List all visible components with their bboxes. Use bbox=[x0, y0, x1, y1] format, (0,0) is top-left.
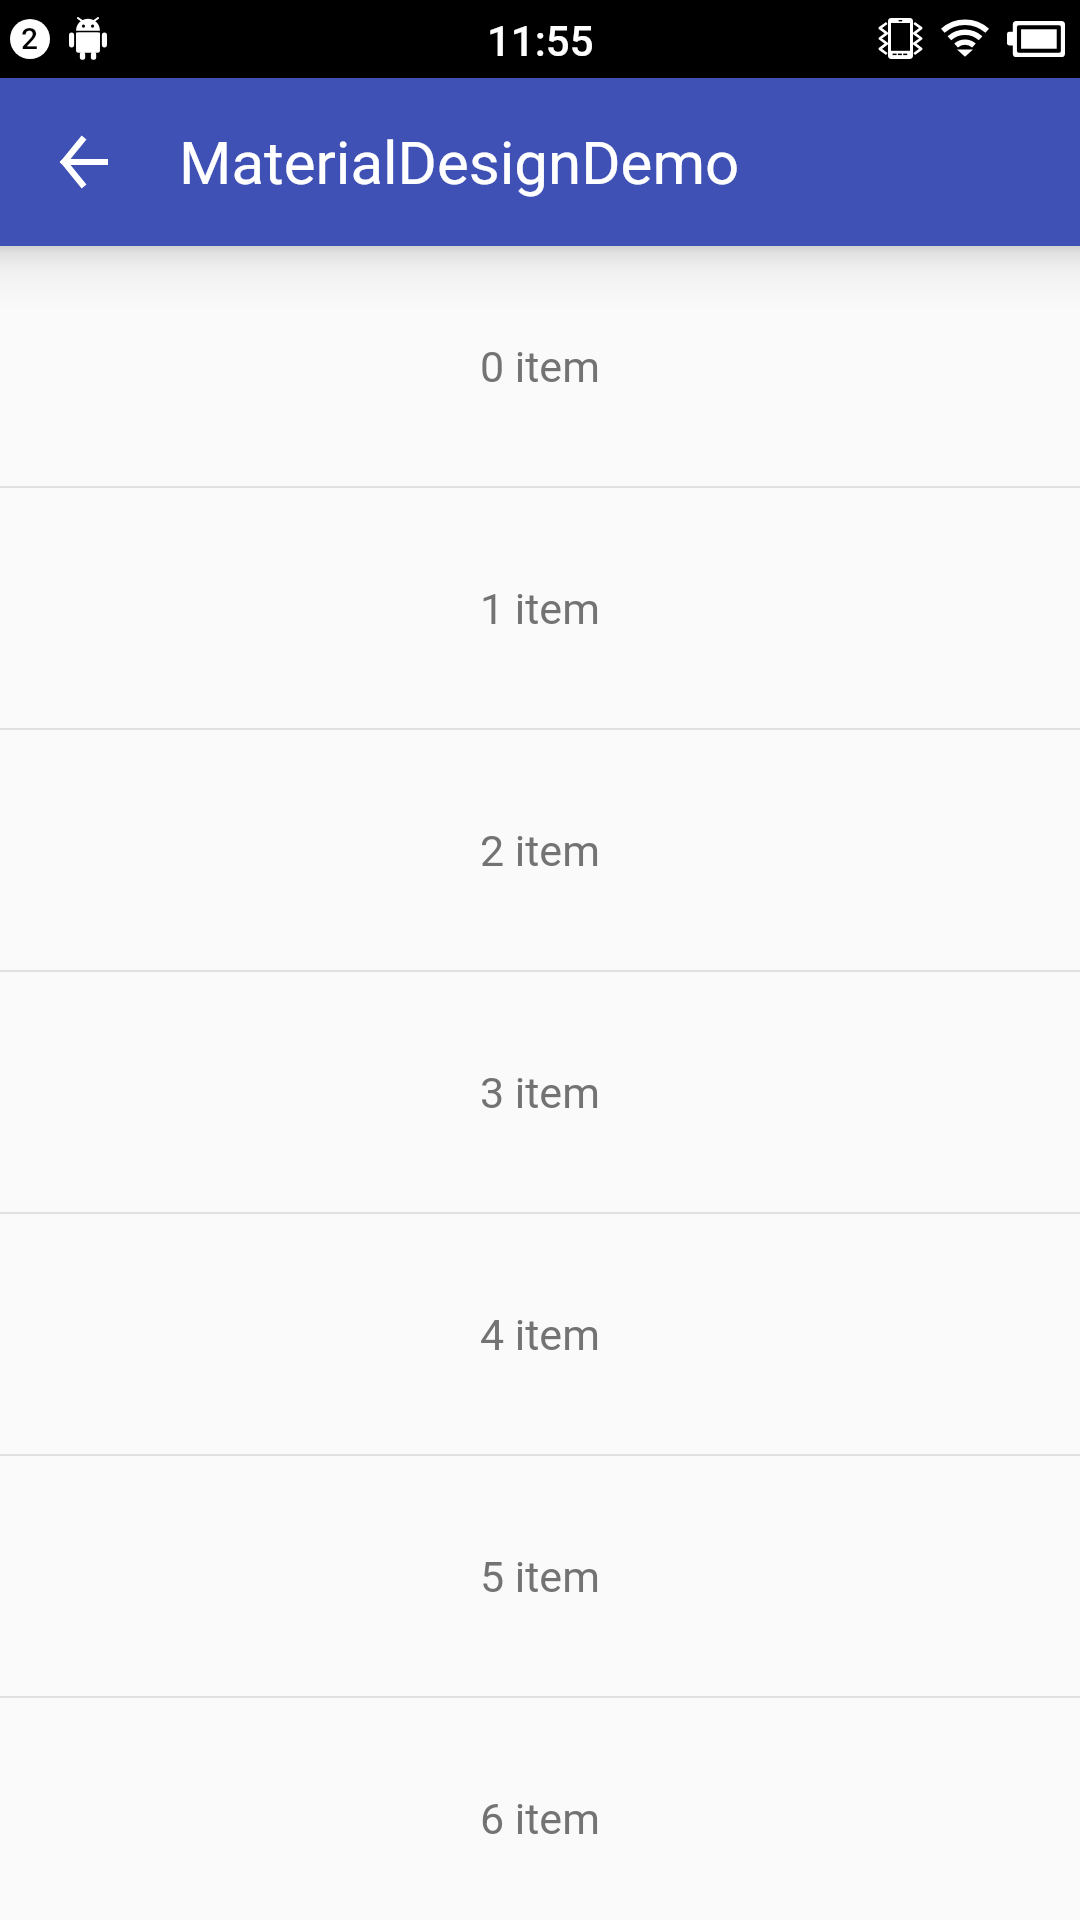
staticText: 5 item bbox=[480, 1552, 600, 1602]
button[interactable]: 4 item bbox=[0, 1214, 1080, 1456]
staticText: 2 bbox=[21, 21, 39, 56]
staticText: 4 item bbox=[480, 1310, 600, 1360]
staticText: 2 item bbox=[480, 826, 600, 876]
button[interactable]: 3 item bbox=[0, 972, 1080, 1214]
staticText: MaterialDesignDemo bbox=[179, 128, 740, 198]
button[interactable]: 6 item bbox=[0, 1698, 1080, 1920]
staticText: 6 item bbox=[480, 1794, 600, 1844]
button[interactable]: 5 item bbox=[0, 1456, 1080, 1698]
button[interactable]: 2 item bbox=[0, 730, 1080, 972]
staticText: 0 item bbox=[480, 342, 600, 392]
staticText: 1 item bbox=[480, 584, 600, 634]
staticText: 11:55 bbox=[487, 17, 594, 66]
button[interactable]: Navigate up bbox=[36, 114, 132, 210]
staticText: 3 item bbox=[480, 1068, 600, 1118]
button[interactable]: 1 item bbox=[0, 488, 1080, 730]
button[interactable]: 0 item bbox=[0, 246, 1080, 488]
